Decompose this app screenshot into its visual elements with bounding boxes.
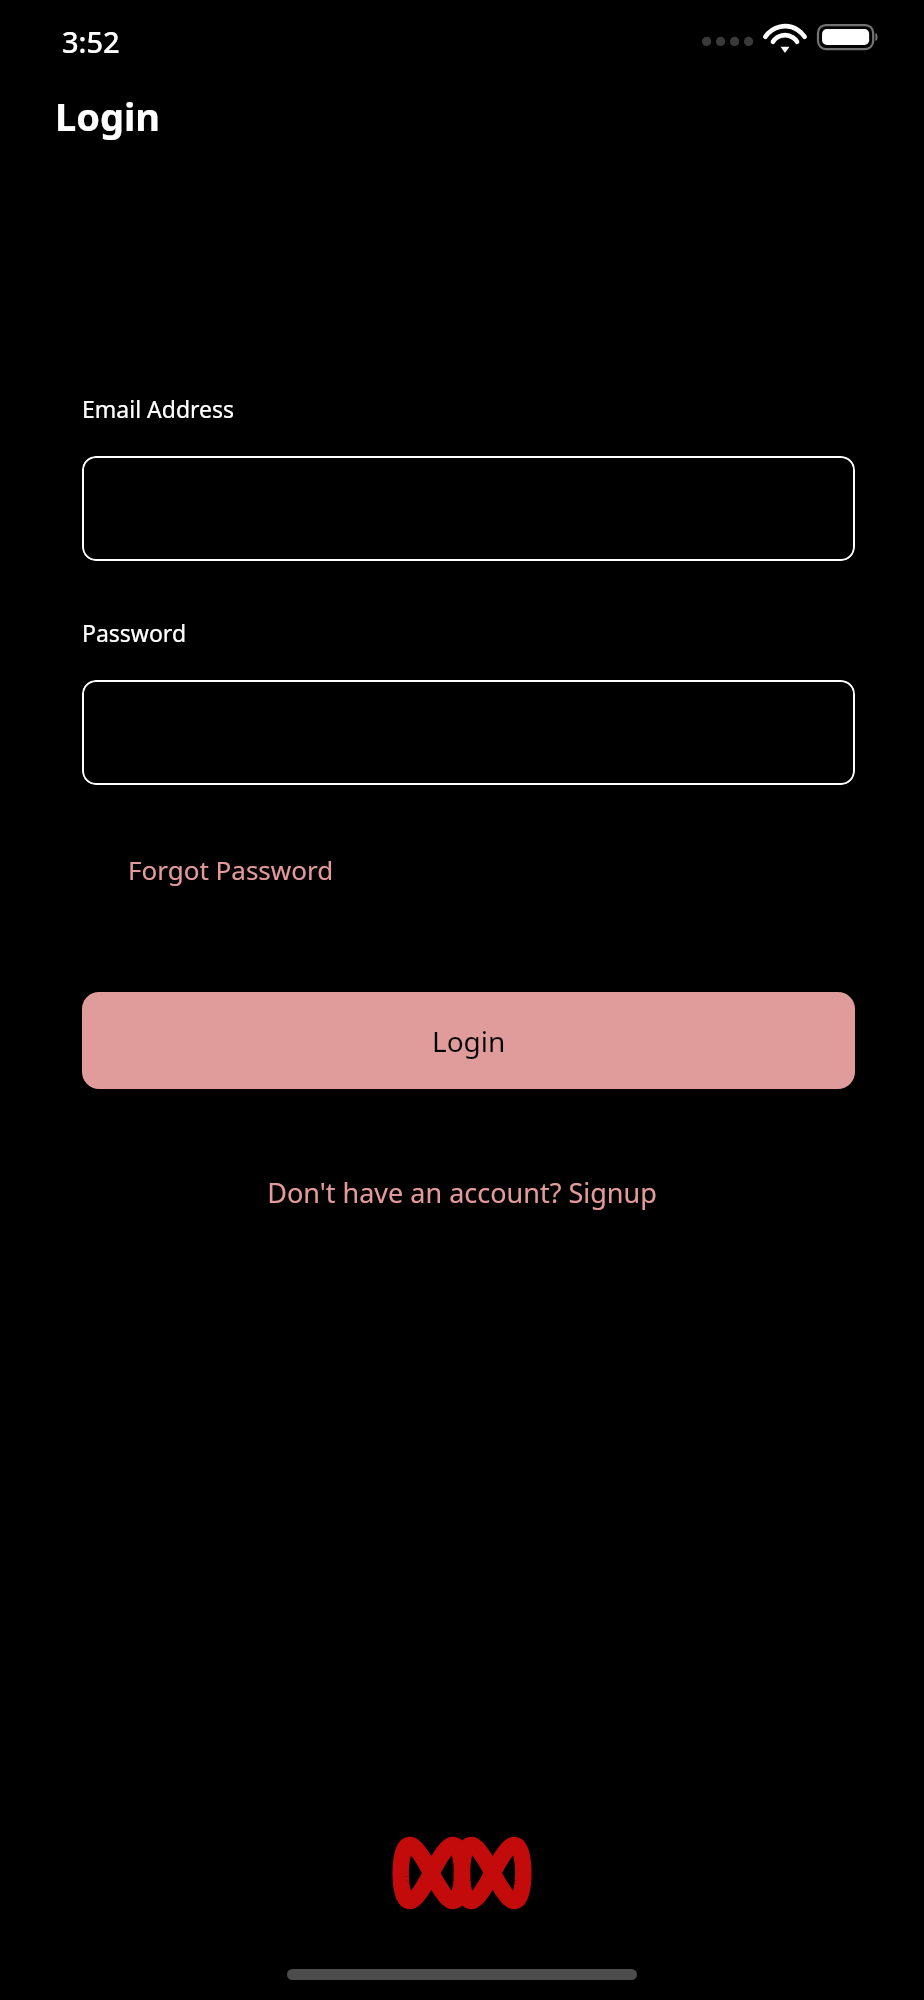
staticText: Don't have an account? Signup xyxy=(267,1174,657,1211)
button[interactable]: Don't have an account? Signup xyxy=(255,1168,669,1217)
button[interactable]: Email Address input xyxy=(82,456,855,561)
staticText: 3:52 xyxy=(62,22,120,61)
button[interactable]: Login xyxy=(82,992,855,1089)
staticText: Forgot Password xyxy=(128,852,334,887)
staticText: Login xyxy=(432,1022,506,1060)
staticText: Password xyxy=(82,617,187,648)
button[interactable]: Forgot Password xyxy=(118,846,344,893)
button[interactable]: Password input xyxy=(82,680,855,785)
staticText: Email Address xyxy=(82,393,235,424)
staticText: Login xyxy=(55,90,161,142)
